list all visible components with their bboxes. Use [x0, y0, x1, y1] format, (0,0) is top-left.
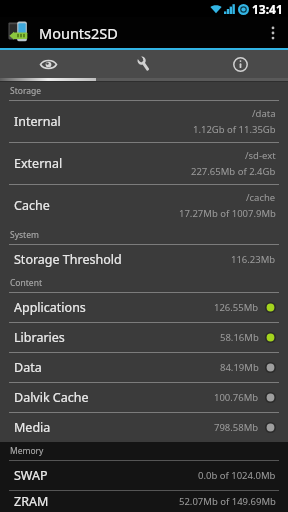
staticText: 52.07Mb of 149.69Mb: [179, 495, 276, 508]
staticText: External: [14, 155, 63, 172]
staticText: 100.76Mb: [214, 391, 259, 404]
staticText: Media: [14, 419, 51, 436]
button[interactable]: ZRAM: [0, 491, 288, 512]
staticText: /sd-ext: [245, 149, 276, 162]
staticText: Libraries: [14, 329, 65, 346]
button[interactable]: Info: [192, 50, 288, 78]
staticText: Memory: [10, 445, 44, 457]
staticText: 227.65Mb of 2.4Gb: [191, 165, 276, 178]
staticText: /data: [252, 107, 276, 120]
staticText: System: [10, 229, 39, 241]
button[interactable]: More options: [258, 17, 288, 48]
staticText: Cache: [14, 197, 50, 214]
button[interactable]: Overview: [0, 50, 96, 78]
button[interactable]: Settings: [96, 50, 192, 78]
button[interactable]: Cache: [0, 185, 288, 226]
staticText: 0.0b of 1024.0Mb: [198, 469, 276, 482]
staticText: Applications: [14, 299, 86, 316]
staticText: 116.23Mb: [231, 253, 276, 266]
button[interactable]: Applications: [0, 293, 288, 322]
button[interactable]: Storage Threshold: [0, 245, 288, 274]
staticText: /cache: [246, 191, 276, 204]
staticText: Content: [10, 277, 42, 289]
staticText: Data: [14, 359, 42, 376]
staticText: 84.19Mb: [220, 361, 259, 374]
staticText: 1.12Gb of 11.35Gb: [193, 123, 276, 136]
staticText: 126.55Mb: [214, 301, 259, 314]
button[interactable]: Libraries: [0, 323, 288, 352]
button[interactable]: Data: [0, 353, 288, 382]
button[interactable]: SWAP: [0, 461, 288, 490]
staticText: Internal: [14, 113, 61, 130]
staticText: Storage: [10, 85, 42, 97]
staticText: 13:41: [252, 1, 283, 17]
staticText: Mounts2SD: [39, 23, 118, 43]
button[interactable]: Internal: [0, 101, 288, 142]
staticText: Dalvik Cache: [14, 389, 89, 406]
staticText: ZRAM: [14, 493, 49, 510]
staticText: 798.58Mb: [214, 421, 259, 434]
staticText: 17.27Mb of 1007.9Mb: [179, 207, 276, 220]
staticText: Storage Threshold: [14, 251, 122, 268]
staticText: SWAP: [14, 467, 48, 484]
staticText: 58.16Mb: [220, 331, 259, 344]
button[interactable]: External: [0, 143, 288, 184]
button[interactable]: Media: [0, 413, 288, 442]
button[interactable]: Dalvik Cache: [0, 383, 288, 412]
